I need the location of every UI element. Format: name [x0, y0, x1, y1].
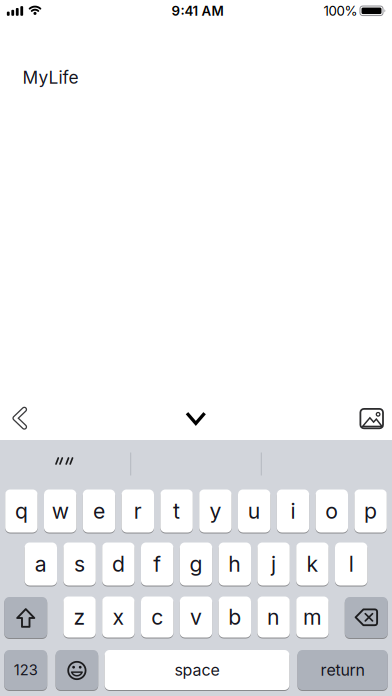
button[interactable]: i: [277, 489, 309, 533]
staticText: g: [189, 551, 202, 577]
button[interactable]: y: [199, 489, 232, 533]
staticText: s: [74, 551, 85, 577]
staticText: k: [306, 551, 318, 577]
staticText: t: [173, 498, 180, 524]
button[interactable]: h: [219, 542, 251, 586]
staticText: b: [228, 604, 241, 630]
button[interactable]: Shift: [4, 596, 47, 638]
button[interactable]: k: [296, 542, 329, 586]
button[interactable]: f: [141, 542, 173, 586]
staticText: f: [153, 551, 161, 577]
staticText: y: [209, 498, 221, 524]
button[interactable]: d: [102, 542, 135, 586]
button[interactable]: u: [238, 489, 270, 533]
staticText: i: [290, 498, 295, 524]
staticText: z: [74, 604, 86, 630]
staticText: return: [321, 661, 365, 679]
button[interactable]: a: [25, 542, 57, 586]
staticText: m: [303, 604, 322, 630]
staticText: 9:41 AM: [171, 3, 223, 19]
button[interactable]: l: [335, 542, 367, 586]
staticText: e: [93, 498, 105, 524]
button[interactable]: v: [180, 596, 212, 638]
button[interactable]: x: [102, 596, 135, 638]
staticText: 123: [14, 661, 38, 679]
button[interactable]: return: [297, 649, 388, 690]
button[interactable]: c: [141, 596, 173, 638]
staticText: a: [35, 551, 47, 577]
staticText: x: [112, 604, 124, 630]
button[interactable]: w: [44, 489, 76, 533]
button[interactable]: j: [257, 542, 290, 586]
button[interactable]: t: [160, 489, 193, 533]
button[interactable]: Back: [1, 398, 37, 438]
button[interactable]: e: [83, 489, 115, 533]
button[interactable]: 123: [4, 649, 47, 690]
button[interactable]: s: [63, 542, 96, 586]
button[interactable]: m: [296, 596, 329, 638]
staticText: MyLife: [22, 67, 78, 88]
staticText: h: [228, 551, 241, 577]
button[interactable]: Emoji: [56, 649, 98, 690]
button[interactable]: Dismiss Keyboard: [174, 398, 218, 438]
staticText: c: [151, 604, 163, 630]
button[interactable]: r: [122, 489, 154, 533]
staticText: l: [349, 551, 354, 577]
button[interactable]: o: [316, 489, 348, 533]
staticText: u: [248, 498, 261, 524]
staticText: q: [15, 498, 28, 524]
button[interactable]: space: [105, 649, 289, 690]
button[interactable]: p: [354, 489, 387, 533]
button[interactable]: "": [0, 438, 130, 484]
staticText: space: [174, 661, 219, 679]
button[interactable]: q: [5, 489, 38, 533]
staticText: w: [52, 498, 69, 524]
button[interactable]: z: [63, 596, 96, 638]
button[interactable]: g: [180, 542, 212, 586]
staticText: d: [112, 551, 125, 577]
staticText: 100%: [323, 3, 357, 19]
button[interactable]: Delete: [345, 596, 388, 638]
staticText: j: [271, 551, 276, 577]
staticText: p: [364, 498, 377, 524]
staticText: v: [190, 604, 202, 630]
button[interactable]: Insert Photo: [349, 396, 392, 440]
button[interactable]: b: [219, 596, 251, 638]
button[interactable]: n: [257, 596, 290, 638]
staticText: o: [325, 498, 338, 524]
staticText: r: [134, 498, 142, 524]
staticText: n: [267, 604, 280, 630]
